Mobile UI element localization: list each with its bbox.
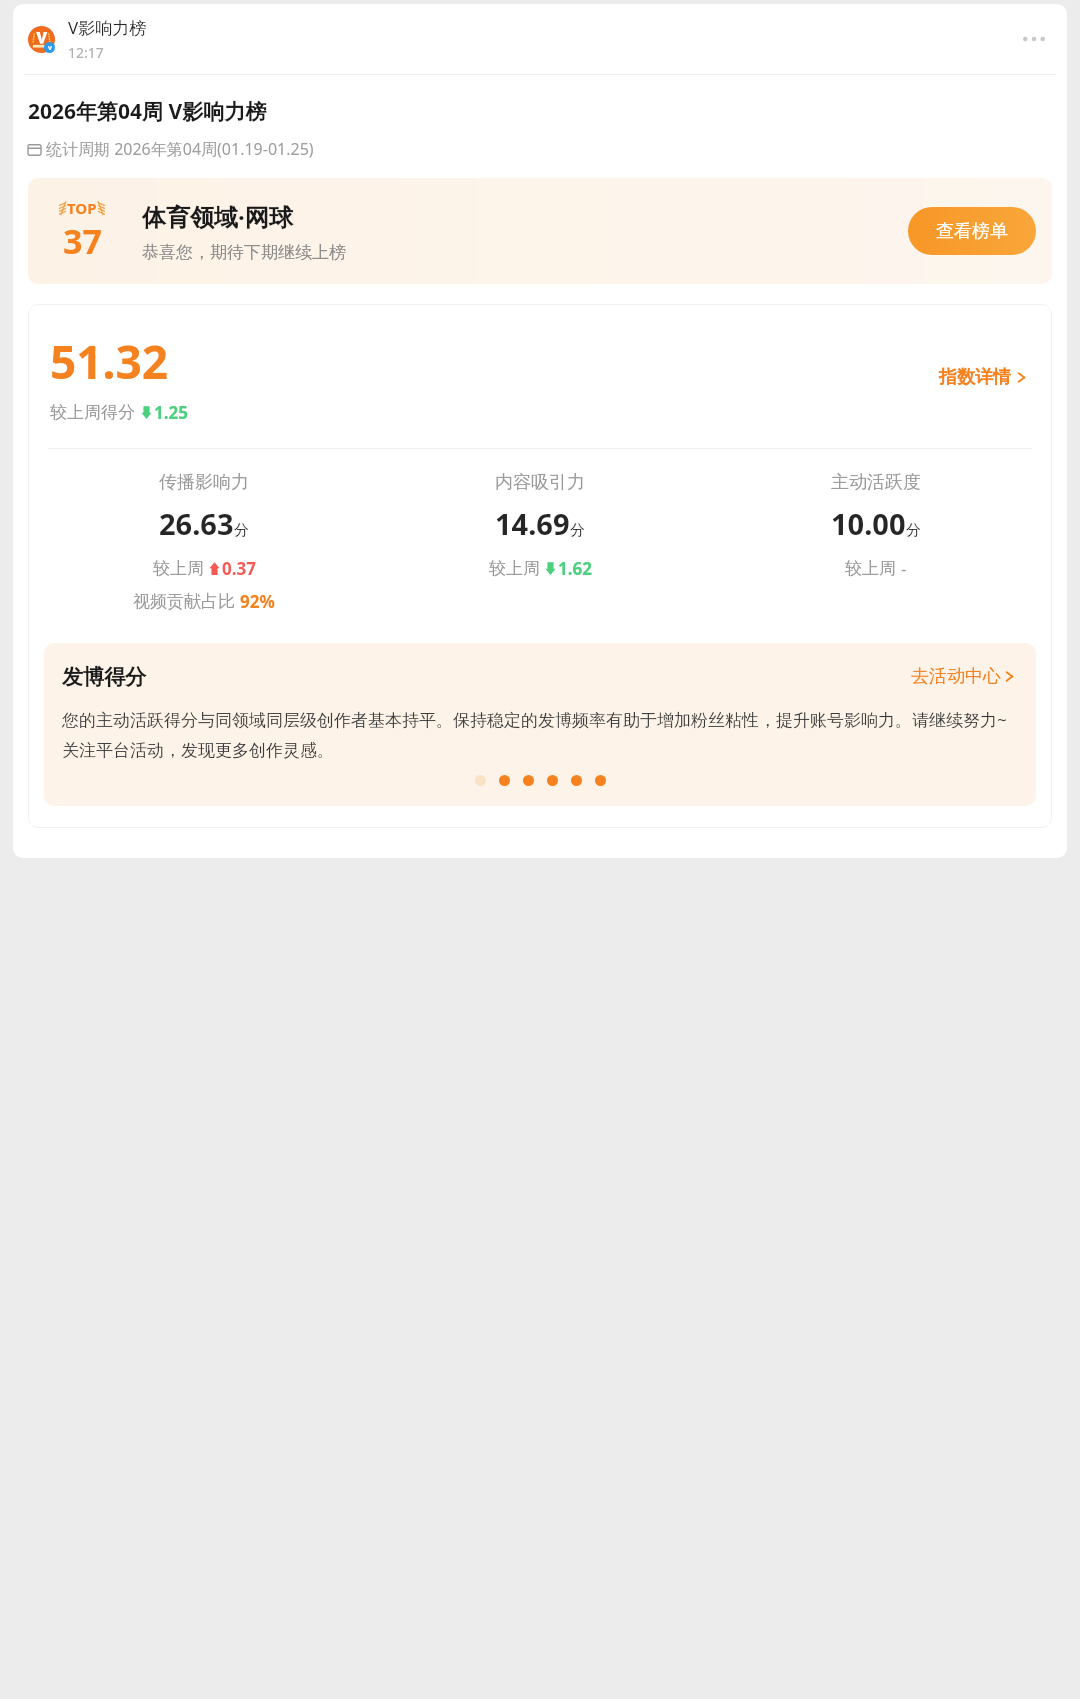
staticText: 统计周期 2026年第04周(01.19-01.25) — [46, 138, 314, 160]
staticText: 内容吸引力 — [495, 471, 585, 494]
staticText: 较上周 — [153, 558, 204, 579]
staticText: 分 — [906, 521, 921, 540]
staticText: 26.63 — [159, 504, 234, 543]
staticText: 1.25 — [154, 401, 188, 424]
staticText: 指数详情 — [939, 366, 1011, 389]
staticText: 1.62 — [558, 557, 592, 580]
staticText: 较上周得分 — [50, 402, 135, 423]
staticText: 92% — [240, 590, 275, 613]
staticText: 较上周 — [845, 558, 896, 579]
staticText: 发博得分 — [62, 664, 909, 690]
staticText: 主动活跃度 — [831, 471, 921, 494]
staticText: - — [901, 557, 907, 580]
staticText: 您的主动活跃得分与同领域同层级创作者基本持平。保持稳定的发博频率有助于增加粉丝粘… — [62, 708, 1018, 761]
staticText: V影响力榜 — [68, 16, 147, 39]
staticText: TOP — [67, 198, 97, 218]
staticText: 12:17 — [68, 43, 104, 62]
staticText: 0.37 — [222, 557, 256, 580]
staticText: 视频贡献占比 — [133, 591, 235, 612]
staticText: V — [48, 44, 52, 52]
staticText: 分 — [570, 521, 585, 540]
staticText: 51.32 — [50, 330, 169, 393]
staticText: 较上周 — [489, 558, 540, 579]
button[interactable]: 查看榜单 — [908, 207, 1036, 255]
button[interactable]: 去活动中心 — [909, 663, 1018, 690]
button[interactable]: 指数详情 — [935, 362, 1032, 393]
staticText: 14.69 — [495, 504, 570, 543]
staticText: 体育领域·网球 — [142, 200, 293, 233]
staticText: 恭喜您，期待下期继续上榜 — [142, 242, 346, 263]
staticText: 37 — [63, 218, 102, 264]
staticText: 2026年第04周 V影响力榜 — [28, 97, 267, 126]
staticText: 10.00 — [831, 504, 906, 543]
staticText: 查看榜单 — [936, 220, 1008, 243]
staticText: 去活动中心 — [911, 665, 1001, 688]
staticText: 传播影响力 — [159, 471, 249, 494]
staticText: 分 — [234, 521, 249, 540]
button[interactable]: More options — [1016, 21, 1052, 57]
button[interactable]: TOP — [28, 178, 1052, 284]
